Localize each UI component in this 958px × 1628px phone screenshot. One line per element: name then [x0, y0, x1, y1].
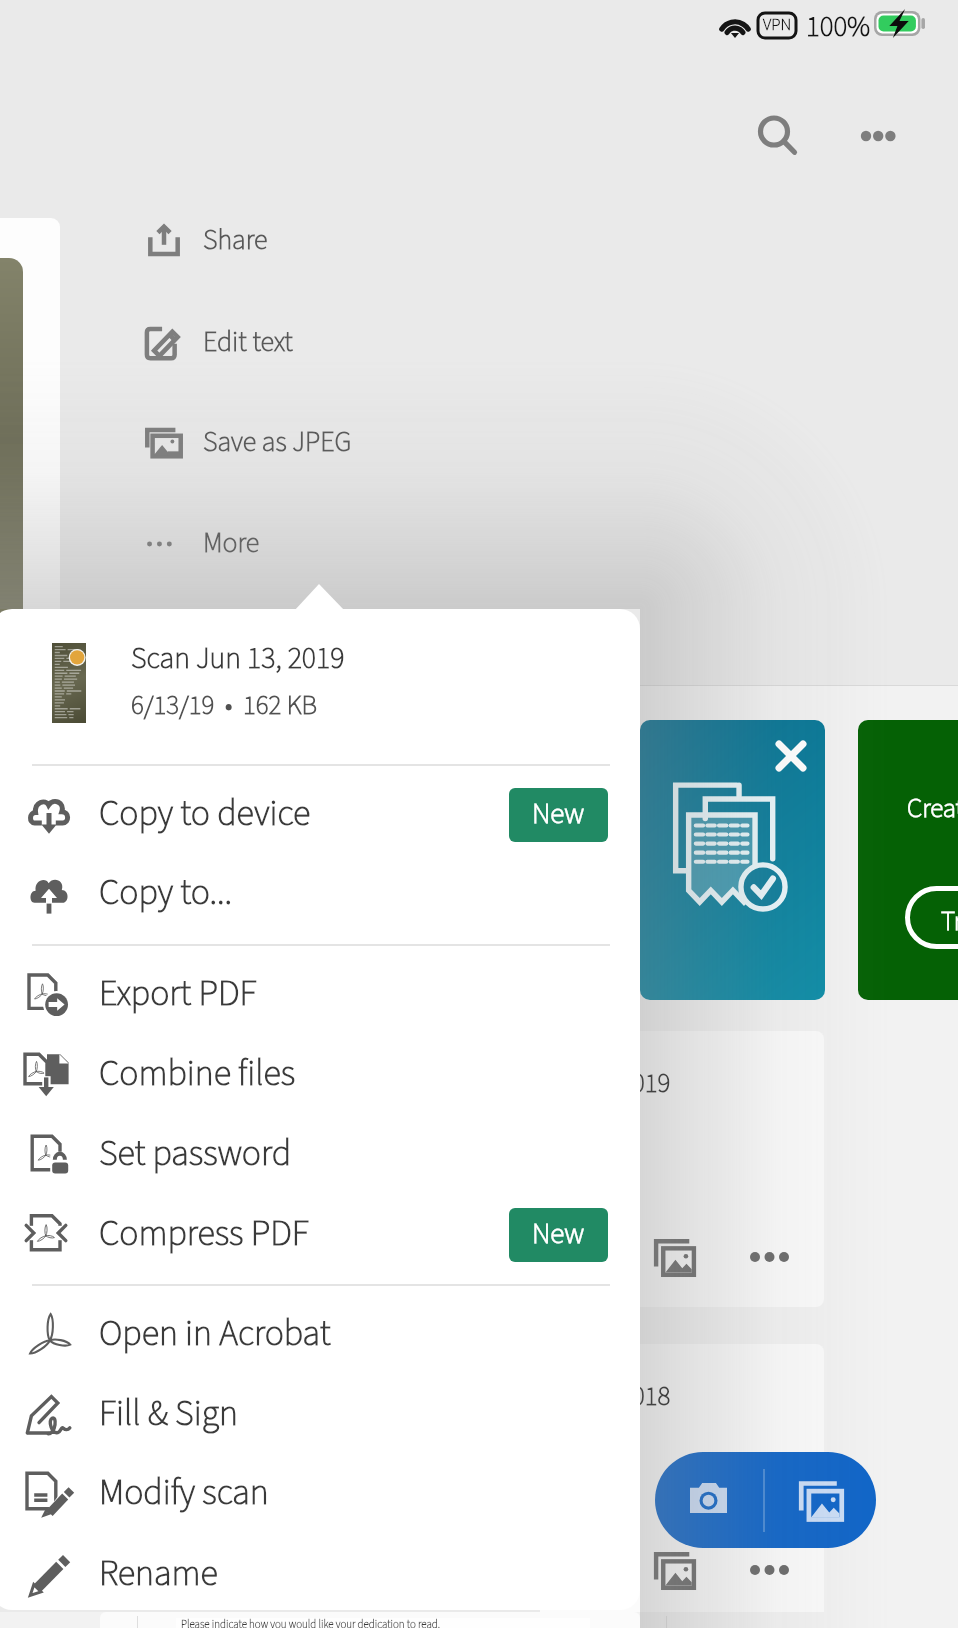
button[interactable]: Copy to device: [0, 775, 640, 855]
button[interactable]: More: [739, 1544, 791, 1596]
staticText: Open in Acrobat: [99, 1308, 331, 1359]
staticText: 018: [632, 1377, 671, 1415]
staticText: Save as JPEG: [203, 422, 352, 462]
staticText: New: [532, 793, 585, 834]
button[interactable]: Compress PDF: [0, 1195, 640, 1275]
staticText: Share: [203, 220, 268, 260]
staticText: Edit text: [203, 322, 293, 362]
button[interactable]: More: [739, 1231, 791, 1283]
button[interactable]: More: [120, 504, 620, 584]
staticText: 6/13/19 • 162 KB: [131, 686, 318, 724]
button[interactable]: Close: [640, 720, 825, 1000]
button[interactable]: 018: [540, 1344, 824, 1620]
staticText: New: [532, 1213, 585, 1254]
button[interactable]: Edit text: [120, 303, 620, 383]
button[interactable]: Scan with camera: [655, 1452, 765, 1548]
button[interactable]: Scan Jun 13, 2019: [0, 609, 640, 764]
button[interactable]: More options: [846, 104, 910, 168]
button[interactable]: Modify scan: [0, 1454, 640, 1534]
button[interactable]: Pick from gallery: [765, 1452, 876, 1548]
button[interactable]: 019: [540, 1031, 824, 1307]
staticText: Modify scan: [99, 1467, 269, 1518]
button[interactable]: Rename: [0, 1535, 640, 1610]
button[interactable]: Save as JPEG: [120, 403, 620, 483]
button[interactable]: Fill & Sign: [0, 1375, 640, 1455]
staticText: Fill & Sign: [99, 1388, 238, 1439]
staticText: Combine files: [99, 1048, 296, 1099]
staticText: 019: [632, 1064, 671, 1102]
staticText: Export PDF: [99, 968, 257, 1019]
button[interactable]: Create: [858, 720, 958, 1000]
staticText: Copy to...: [99, 867, 233, 918]
button[interactable]: Set password: [0, 1115, 640, 1195]
staticText: Rename: [99, 1548, 218, 1599]
button[interactable]: Export PDF: [0, 955, 640, 1035]
button[interactable]: Copy to...: [0, 854, 640, 934]
button[interactable]: Open in Acrobat: [0, 1295, 640, 1375]
staticText: Set password: [99, 1128, 292, 1179]
staticText: More: [203, 523, 260, 563]
staticText: 100%: [806, 6, 871, 47]
staticText: Please indicate how you would like your …: [181, 1617, 440, 1628]
staticText: Scan Jun 13, 2019: [131, 637, 345, 680]
staticText: Create: [907, 789, 958, 827]
staticText: Copy to device: [99, 788, 311, 839]
button[interactable]: Share: [120, 201, 620, 281]
button[interactable]: Search: [742, 100, 806, 164]
button[interactable]: Combine files: [0, 1035, 640, 1115]
staticText: Compress PDF: [99, 1208, 309, 1259]
staticText: Try: [941, 902, 958, 940]
staticText: VPN: [763, 13, 792, 37]
button[interactable]: Close: [768, 733, 814, 779]
